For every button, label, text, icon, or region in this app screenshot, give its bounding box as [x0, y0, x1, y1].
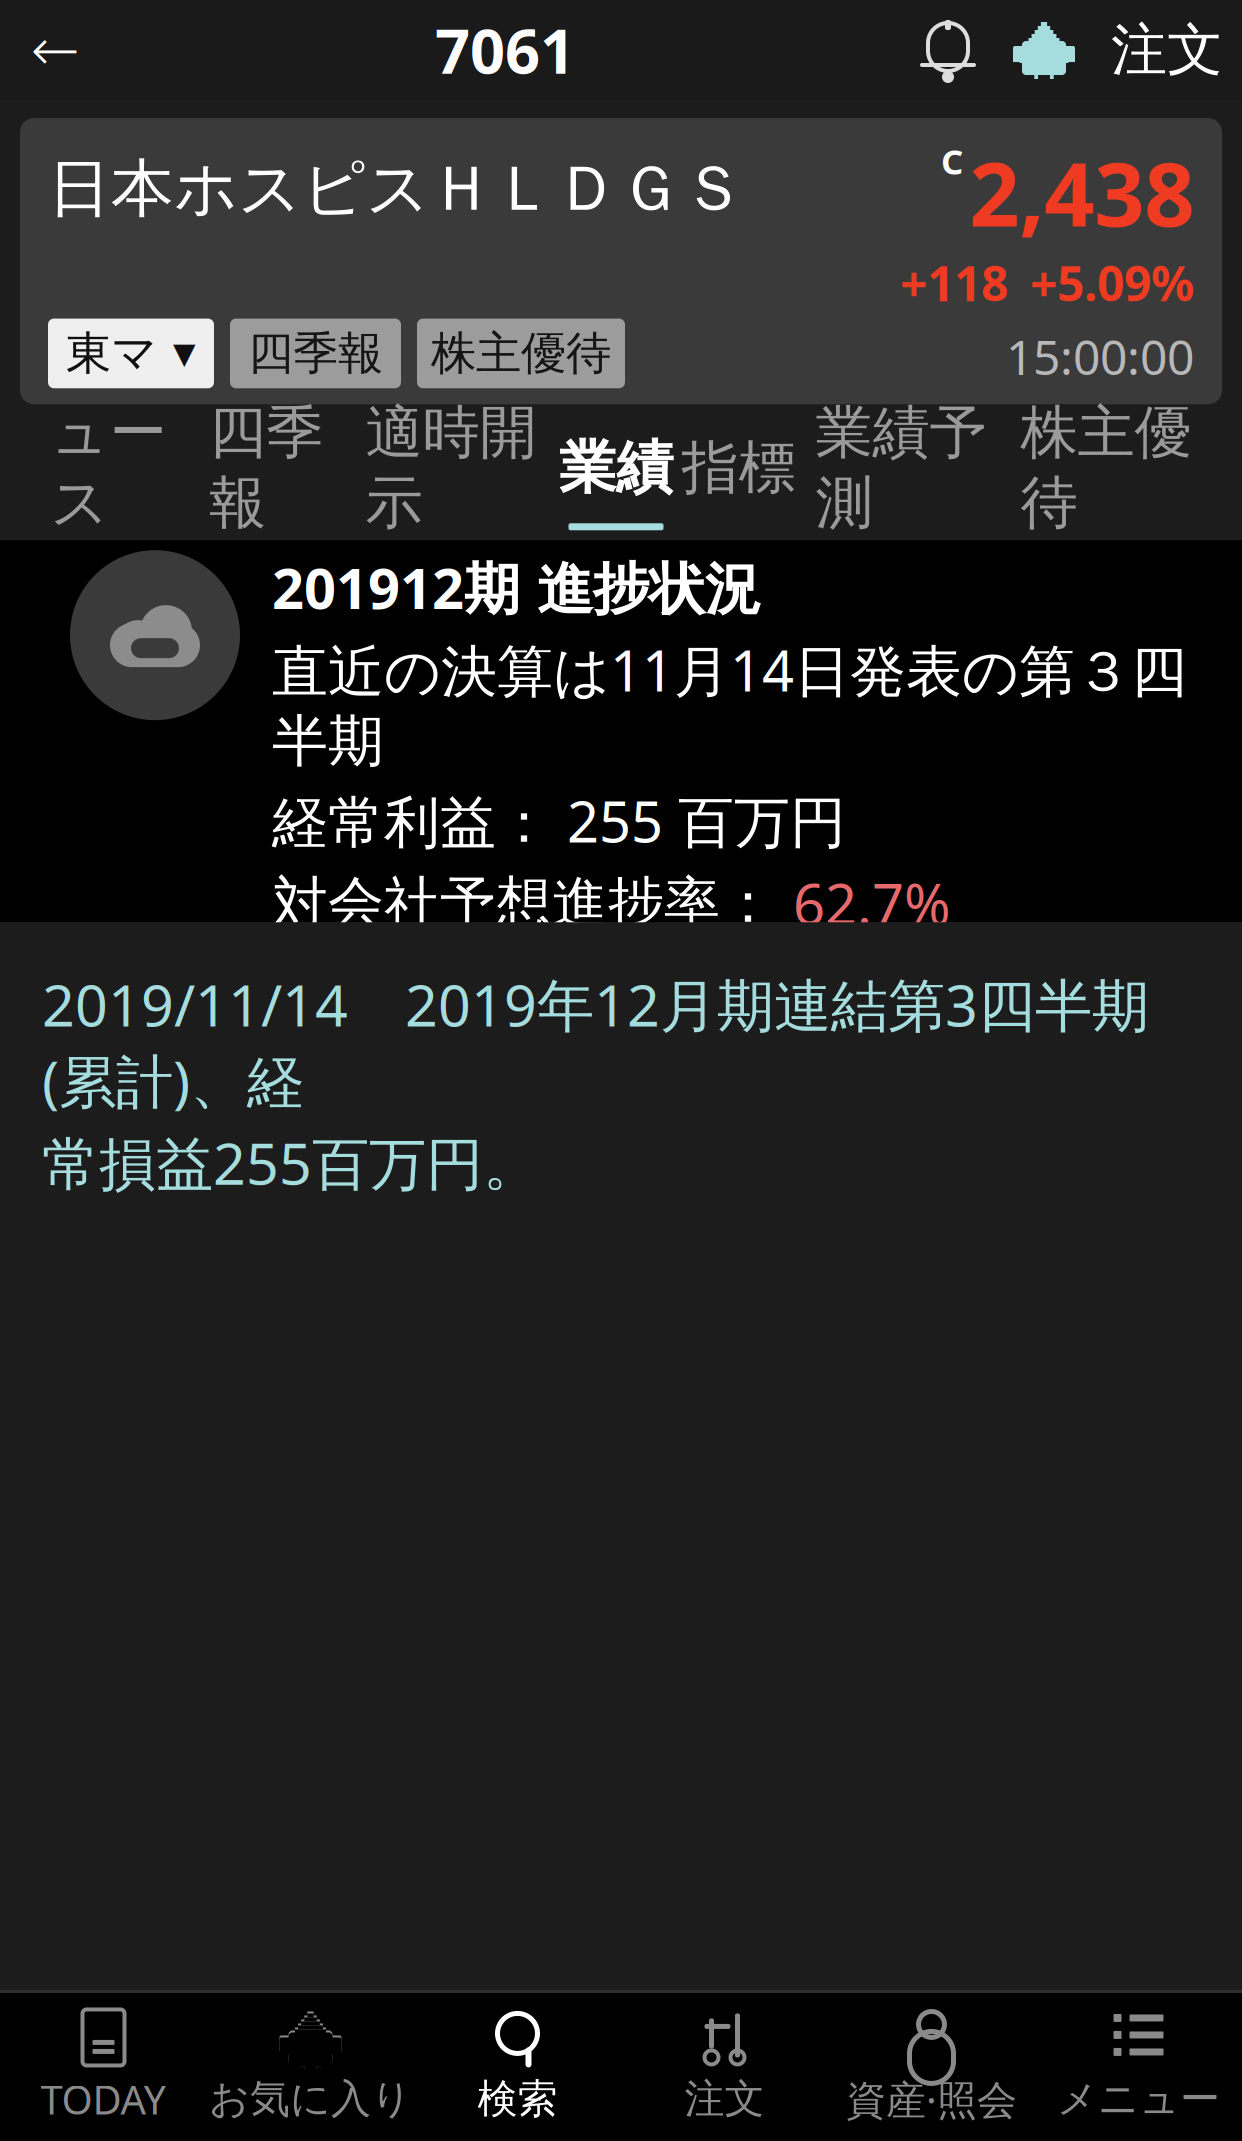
staticText: 対会社予想進捗率：: [272, 869, 793, 938]
button[interactable]: 業績予測: [798, 412, 1003, 540]
staticText: 東マ: [66, 326, 157, 381]
staticText: +5.09%: [1030, 251, 1194, 315]
button[interactable]: お気に入り: [207, 1993, 414, 2141]
staticText: 適時開示: [365, 397, 536, 538]
staticText: -200: [66, 1970, 169, 2037]
staticText: ▼: [173, 337, 196, 370]
button[interactable]: 東マ: [48, 319, 214, 388]
staticText: 四季報: [209, 397, 323, 538]
button[interactable]: 業績: [553, 412, 678, 540]
button[interactable]: 株主優待: [417, 319, 625, 388]
staticText: ←: [30, 17, 79, 83]
staticText: 資産·照会: [846, 2072, 1017, 2125]
staticText: 通期: [1003, 2063, 1109, 2128]
staticText: 62.7%: [793, 866, 951, 940]
staticText: 2019/11/14 2019年12月期連結第3四半期(累計)、経: [42, 966, 1149, 1119]
staticText: メニュー: [1057, 2074, 1220, 2123]
button[interactable]: お気に入り: [996, 0, 1092, 100]
button[interactable]: 戻る: [0, 0, 110, 100]
staticText: 株主優待: [431, 326, 611, 381]
staticText: C: [941, 138, 963, 184]
staticText: 業績: [559, 433, 673, 503]
staticText: +118: [900, 251, 1008, 315]
staticText: 四季報: [248, 326, 383, 381]
button[interactable]: 注文: [621, 1993, 828, 2141]
staticText: 7061: [435, 9, 575, 91]
staticText: 注文: [1111, 16, 1223, 84]
staticText: 経常利益： 255 百万円: [272, 784, 846, 858]
staticText: TODAY: [40, 2072, 166, 2125]
button[interactable]: 四季報: [183, 412, 348, 540]
staticText: 業績予測: [815, 397, 986, 538]
staticText: お気に入り: [209, 2074, 412, 2123]
button[interactable]: 株主優待: [1003, 412, 1208, 540]
staticText: 指標: [681, 433, 795, 503]
staticText: 株主優待: [1020, 397, 1191, 538]
button[interactable]: 資産·照会: [828, 1993, 1035, 2141]
staticText: 検索: [477, 2074, 557, 2123]
button[interactable]: 注文: [1092, 0, 1242, 100]
button[interactable]: 検索: [414, 1993, 621, 2141]
button[interactable]: メニュー: [1035, 1993, 1242, 2141]
staticText: 注文: [684, 2074, 764, 2123]
button[interactable]: ュース: [33, 412, 183, 540]
button[interactable]: 2019/11/14 2019年12月期連結第3四半期(累計)、経: [0, 922, 1191, 1201]
staticText: 1Q: [283, 2060, 356, 2131]
button[interactable]: TODAY: [0, 1993, 207, 2141]
staticText: 常損益255百万円。: [42, 1125, 540, 1201]
button[interactable]: 四季報: [230, 319, 401, 388]
staticText: 15:00:00: [1006, 324, 1194, 388]
button[interactable]: 指標: [678, 412, 798, 540]
button[interactable]: 適時開示: [348, 412, 553, 540]
staticText: 201912期 進捗状況: [272, 550, 761, 625]
staticText: 2,438: [969, 134, 1194, 251]
staticText: 直近の決算は11月14日発表の第３四半期: [272, 632, 1187, 776]
staticText: ュース: [50, 397, 166, 538]
staticText: 2Q: [529, 2060, 602, 2131]
staticText: 日本ホスピスＨＬＤＧＳ: [48, 150, 745, 227]
button[interactable]: アラート: [900, 0, 996, 100]
